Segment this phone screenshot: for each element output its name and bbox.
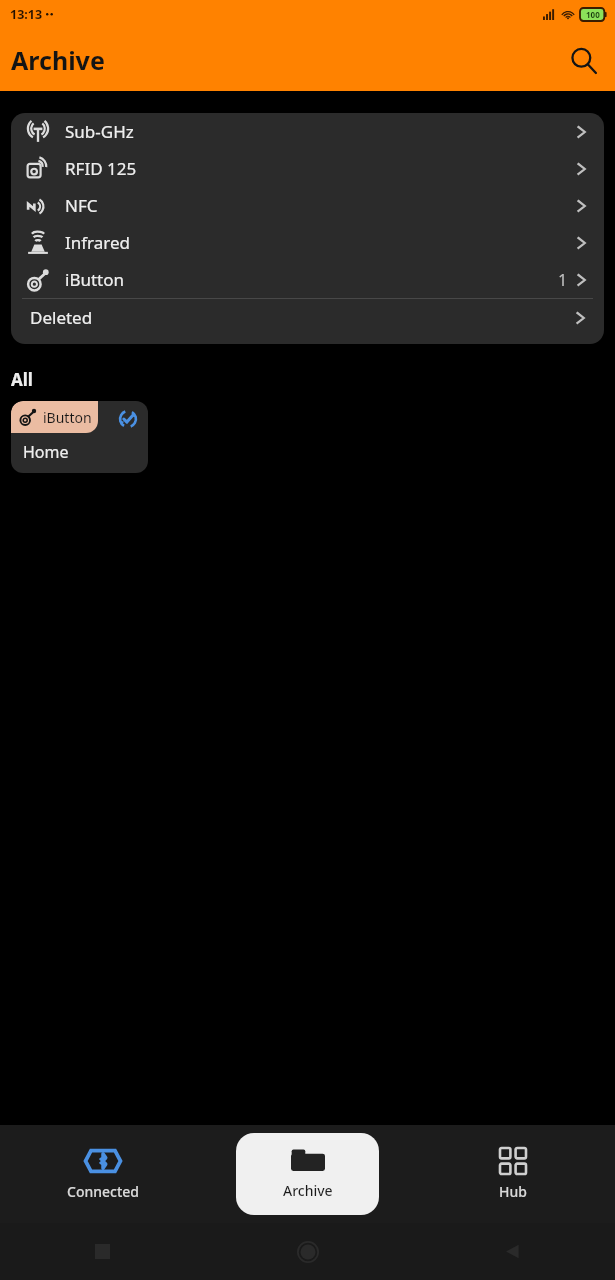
staticText: 13:13	[10, 6, 43, 23]
button[interactable]: Search	[561, 38, 605, 82]
button[interactable]: iButton	[11, 401, 148, 473]
button[interactable]: iButton	[11, 261, 604, 298]
button[interactable]: NFC	[11, 187, 604, 224]
staticText: Sub-GHz	[65, 120, 134, 143]
staticText: All	[11, 368, 33, 391]
button[interactable]: RFID 125	[11, 150, 604, 187]
staticText: Deleted	[30, 306, 93, 329]
button[interactable]: Sub-GHz	[11, 113, 604, 150]
staticText: iButton	[43, 408, 92, 427]
button[interactable]: Infrared	[11, 224, 604, 261]
staticText: 1	[558, 269, 568, 291]
staticText: 100	[586, 9, 600, 20]
staticText: Infrared	[65, 231, 131, 254]
staticText: NFC	[65, 194, 98, 217]
staticText: Archive	[283, 1181, 333, 1200]
button[interactable]: Connected	[0, 1125, 205, 1223]
staticText: Connected	[67, 1182, 139, 1201]
staticText: Hub	[499, 1182, 527, 1201]
staticText: iButton	[65, 268, 125, 291]
button[interactable]: Deleted	[11, 299, 604, 336]
staticText: Home	[23, 441, 69, 463]
button[interactable]: Archive	[236, 1133, 379, 1215]
staticText: RFID 125	[65, 157, 137, 180]
button[interactable]: Hub	[410, 1125, 615, 1223]
staticText: Archive	[11, 43, 105, 77]
